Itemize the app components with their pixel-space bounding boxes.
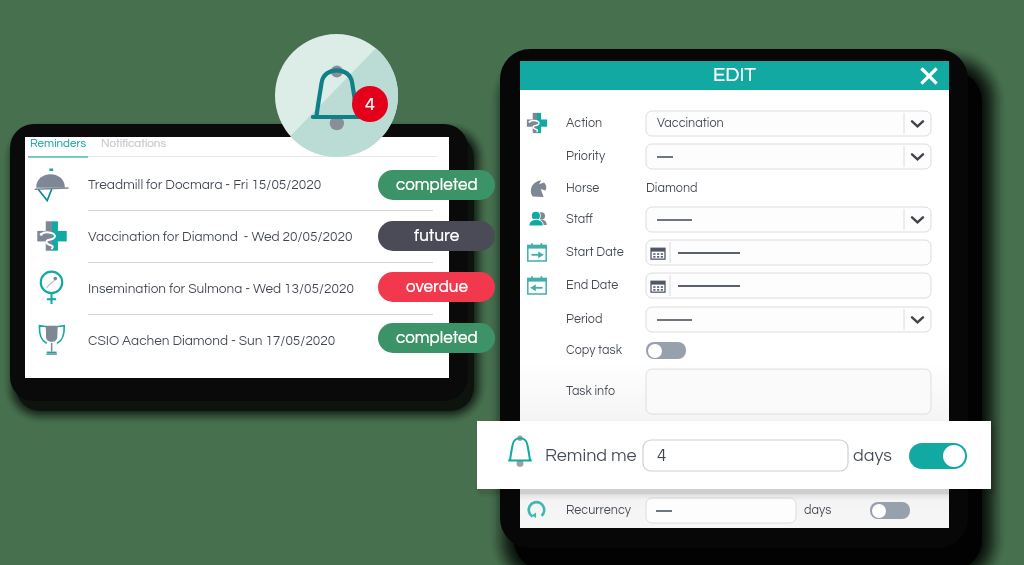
button[interactable]: Toggle	[646, 342, 686, 359]
staticText: Reminders	[30, 137, 87, 149]
button[interactable]: Reminders	[30, 137, 87, 149]
staticText: Horse	[566, 182, 600, 195]
button[interactable]: Vaccination for Diamond - Wed 20/05/2020	[25, 211, 449, 262]
staticText: completed	[396, 176, 478, 194]
button[interactable]	[646, 144, 931, 169]
staticText: Start Date	[566, 246, 624, 259]
button[interactable]: overdue	[378, 272, 495, 302]
button[interactable]	[646, 273, 931, 298]
button[interactable]: Insemination for Sulmona - Wed 13/05/202…	[25, 263, 449, 314]
staticText: completed	[396, 329, 478, 347]
button[interactable]	[646, 240, 931, 265]
staticText: Staff	[566, 213, 593, 226]
staticText: Task info	[566, 385, 616, 398]
button[interactable]	[646, 498, 796, 523]
button[interactable]: Notifications	[101, 137, 166, 149]
staticText: days	[804, 504, 832, 517]
button[interactable]: completed	[378, 170, 495, 200]
staticText: Diamond	[646, 182, 698, 195]
button[interactable]	[646, 207, 931, 232]
button[interactable]: CSIO Aachen Diamond - Sun 17/05/2020	[25, 315, 449, 366]
staticText: CSIO Aachen Diamond - Sun 17/05/2020	[88, 334, 336, 348]
button[interactable]: Remind toggle	[909, 443, 967, 469]
staticText: days	[853, 446, 893, 465]
staticText: future	[414, 227, 460, 245]
staticText: Insemination for Sulmona - Wed 13/05/202…	[88, 282, 354, 296]
staticText: Recurrency	[566, 504, 632, 517]
button[interactable]: 4 notifications	[352, 86, 388, 122]
button[interactable]	[646, 369, 931, 414]
button[interactable]: completed	[378, 323, 495, 353]
button[interactable]: 4	[643, 440, 848, 471]
button[interactable]: Close	[917, 64, 941, 88]
staticText: overdue	[406, 278, 468, 296]
staticText: 4	[657, 447, 667, 465]
staticText: 4	[365, 95, 375, 114]
staticText: Priority	[566, 150, 606, 163]
button[interactable]	[646, 307, 931, 332]
staticText: End Date	[566, 279, 619, 292]
button[interactable]: Treadmill for Docmara - Fri 15/05/2020	[25, 159, 449, 210]
staticText: Treadmill for Docmara - Fri 15/05/2020	[88, 178, 322, 192]
button[interactable]: future	[378, 221, 495, 251]
staticText: EDIT	[520, 65, 949, 86]
staticText: Notifications	[101, 137, 166, 149]
staticText: Period	[566, 313, 603, 326]
button[interactable]: Toggle	[870, 502, 910, 519]
staticText: Vaccination for Diamond - Wed 20/05/2020	[88, 230, 353, 244]
staticText: Action	[566, 117, 603, 130]
staticText: Remind me	[545, 446, 637, 465]
button[interactable]: Vaccination	[646, 111, 931, 136]
staticText: Copy task	[566, 344, 622, 357]
staticText: Vaccination	[657, 117, 724, 130]
